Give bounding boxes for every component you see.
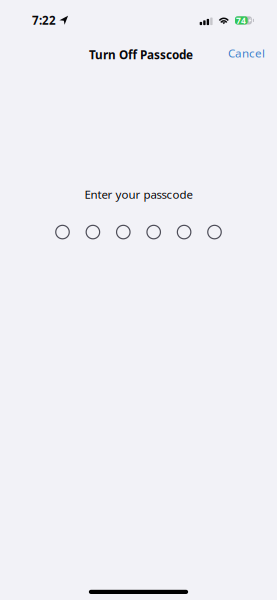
staticText: 7:22	[32, 12, 56, 28]
staticText: Enter your passcode	[84, 186, 192, 202]
button[interactable]: Cancel	[222, 39, 271, 69]
staticText: Turn Off Passcode	[89, 47, 193, 63]
button[interactable]: Passcode	[46, 221, 231, 243]
staticText: Cancel	[228, 45, 265, 61]
staticText: 74	[236, 15, 246, 26]
